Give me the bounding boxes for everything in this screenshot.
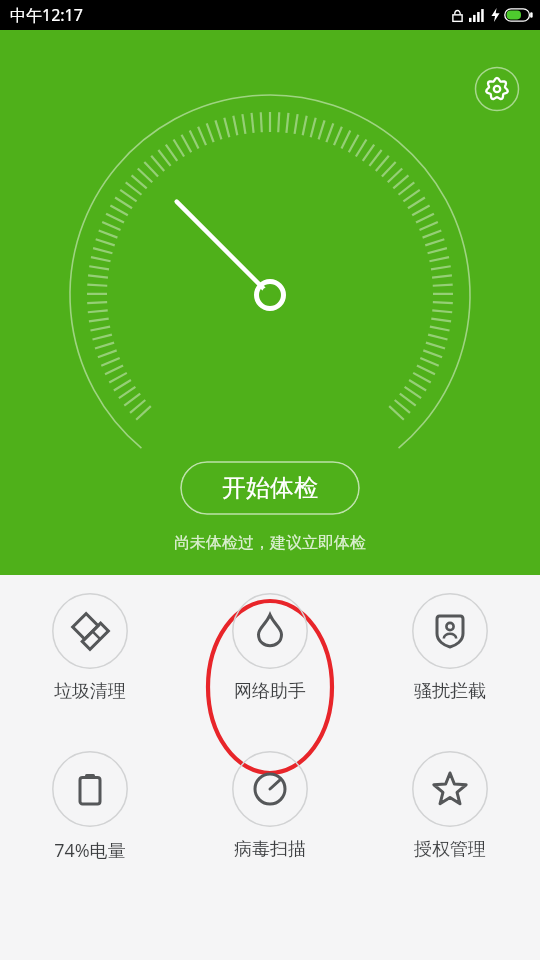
staticText: 尚未体检过，建议立即体检 [174,533,366,553]
staticText: 骚扰拦截 [414,680,486,703]
staticText: 中午12:17 [10,4,83,26]
button[interactable]: 授权管理 [360,751,540,891]
button[interactable]: 开始体检 [180,461,360,515]
staticText: 病毒扫描 [234,838,306,861]
button[interactable]: 74%电量 [0,751,180,891]
button[interactable]: 垃圾清理 [0,593,180,733]
button[interactable]: 网络助手 [180,593,360,733]
staticText: 74%电量 [54,838,126,863]
staticText: 网络助手 [234,680,306,703]
button[interactable]: Settings [474,66,520,112]
staticText: 垃圾清理 [54,680,126,703]
button[interactable]: 病毒扫描 [180,751,360,891]
staticText: 开始体检 [222,473,318,503]
staticText: 授权管理 [414,838,486,861]
button[interactable]: 骚扰拦截 [360,593,540,733]
